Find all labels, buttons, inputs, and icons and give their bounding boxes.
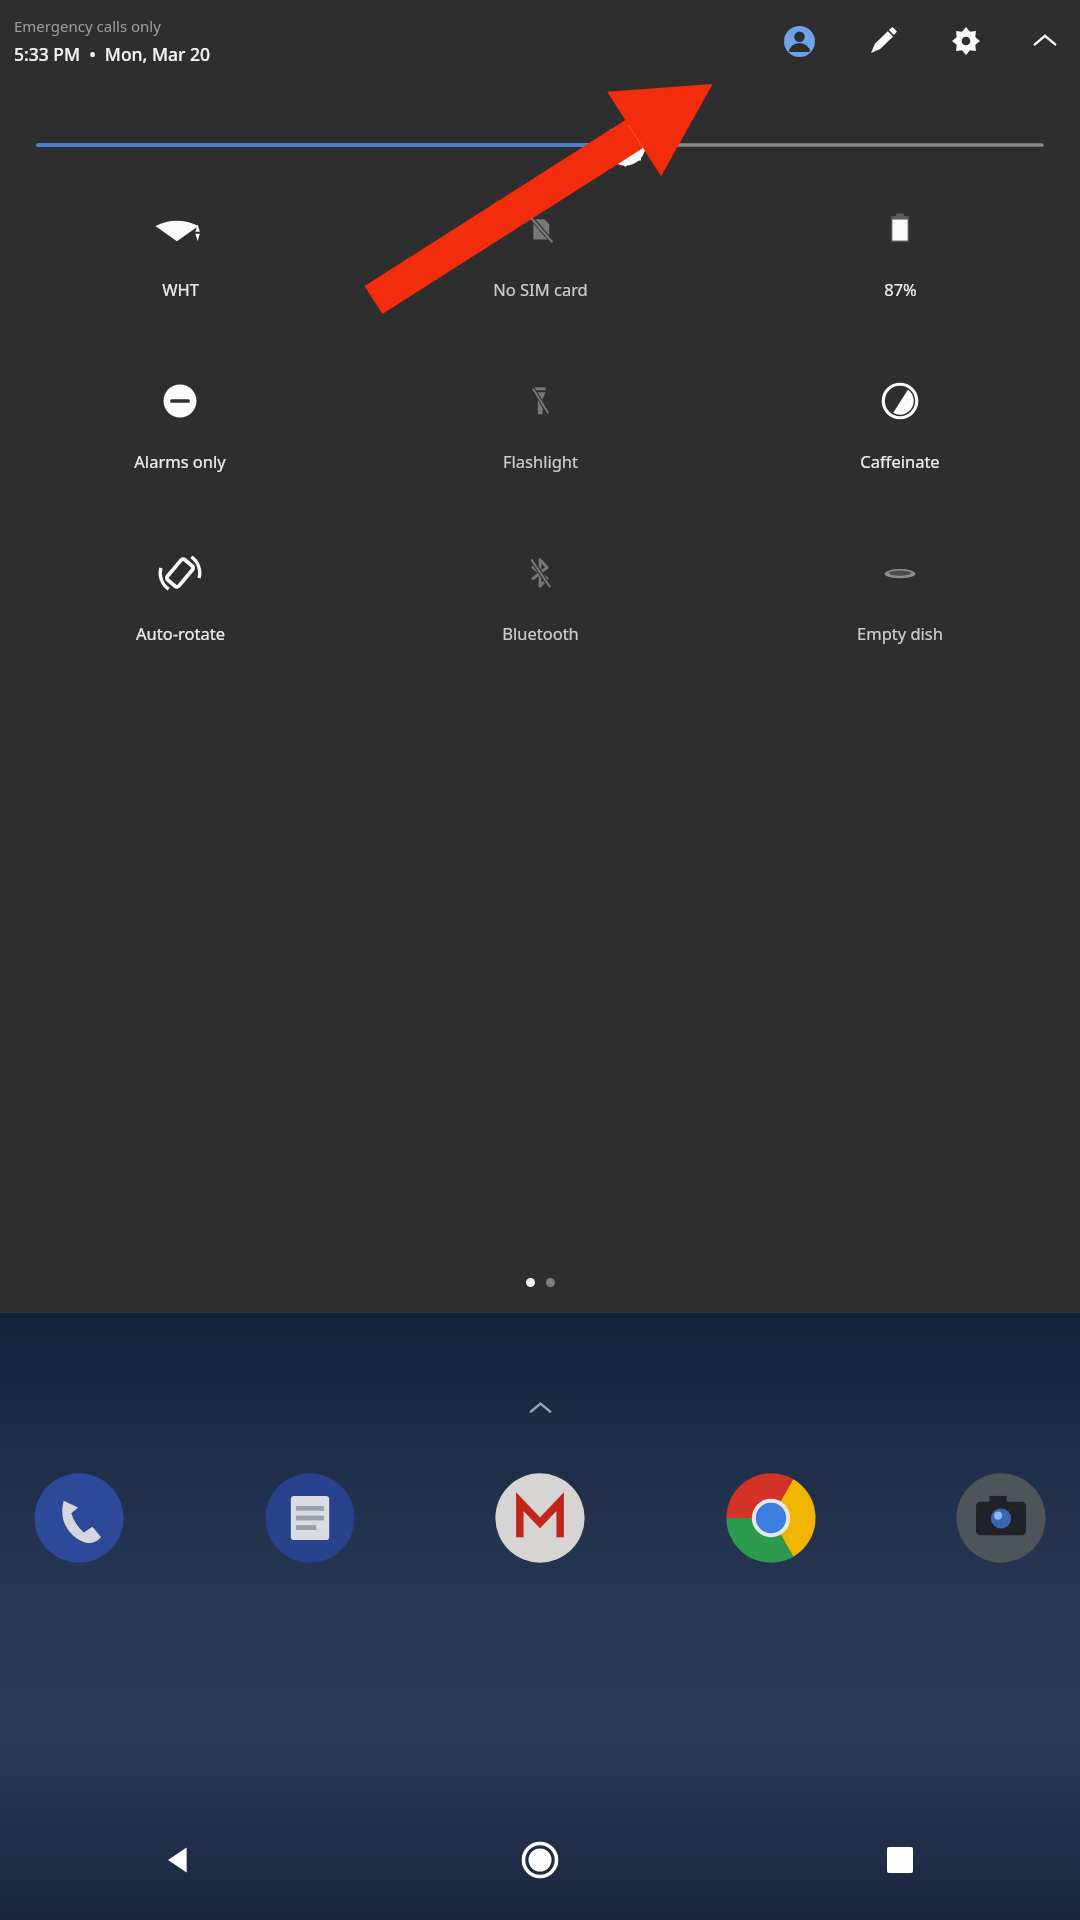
- button[interactable]: Chrome: [714, 1461, 828, 1575]
- staticText: WHT: [162, 278, 199, 300]
- button[interactable]: Camera: [944, 1461, 1058, 1575]
- staticText: No SIM card: [493, 278, 588, 300]
- button[interactable]: Collapse: [1022, 18, 1068, 64]
- button[interactable]: Home: [360, 1800, 720, 1920]
- staticText: Emergency calls only: [14, 16, 161, 36]
- button[interactable]: Alarms only: [0, 374, 360, 514]
- button[interactable]: Empty dish: [720, 546, 1080, 686]
- staticText: Auto-rotate: [136, 622, 225, 644]
- button[interactable]: Recent apps: [720, 1800, 1080, 1920]
- staticText: Flashlight: [503, 450, 578, 472]
- staticText: Empty dish: [857, 622, 943, 644]
- button[interactable]: Bluetooth: [360, 546, 720, 686]
- staticText: Bluetooth: [502, 622, 579, 644]
- button[interactable]: All apps: [517, 1385, 563, 1431]
- button[interactable]: Edit tiles: [860, 18, 906, 64]
- button[interactable]: User account: [776, 18, 822, 64]
- button[interactable]: No SIM card: [360, 202, 720, 342]
- button[interactable]: Gmail: [483, 1461, 597, 1575]
- button[interactable]: WHT: [0, 202, 360, 342]
- button[interactable]: Caffeinate: [720, 374, 1080, 514]
- button[interactable]: 87%: [720, 202, 1080, 342]
- staticText: 5:33 PM • Mon, Mar 20: [14, 42, 210, 66]
- button[interactable]: Brightness slider: [38, 122, 1042, 168]
- staticText: Caffeinate: [860, 450, 940, 472]
- button[interactable]: Settings: [943, 18, 989, 64]
- button[interactable]: Auto-rotate: [0, 546, 360, 686]
- button[interactable]: Flashlight: [360, 374, 720, 514]
- staticText: 87%: [884, 278, 917, 300]
- button[interactable]: Messages: [253, 1461, 367, 1575]
- button[interactable]: Phone: [22, 1461, 136, 1575]
- staticText: Alarms only: [134, 450, 226, 472]
- button[interactable]: Back: [0, 1800, 360, 1920]
